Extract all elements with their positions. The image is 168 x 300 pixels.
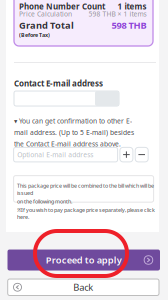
staticText: (Before Tax) <box>19 31 50 38</box>
staticText: Proceed to apply <box>46 254 122 266</box>
staticText: 1 items <box>117 1 146 12</box>
button[interactable]: Add e-mail field <box>120 147 133 162</box>
staticText: on the following month. <box>17 198 72 205</box>
staticText: Back <box>73 281 93 293</box>
staticText: 598 THB × 1 items <box>88 10 146 18</box>
button[interactable]: Proceed to apply <box>7 249 160 270</box>
button[interactable]: Remove e-mail field <box>135 147 148 162</box>
button[interactable]: Back <box>8 279 159 295</box>
staticText: Optional E-mail address <box>17 150 93 159</box>
staticText: Price Calculation <box>19 10 72 18</box>
staticText: This package price will be combined to t… <box>17 182 154 196</box>
staticText: mail address. (Up to 5 E-mail) besides <box>14 128 134 137</box>
staticText: the Contact E-mail address above. <box>14 139 121 148</box>
staticText: Contact E-mail address <box>14 78 103 89</box>
staticText: ※If you wish to pay package price separa… <box>17 206 155 220</box>
staticText: 598 THB <box>111 19 146 31</box>
staticText: Grand Total <box>19 19 74 31</box>
staticText: Phone Number Count <box>19 1 105 12</box>
staticText: ▾ You can get confirmation to other E- <box>14 116 132 125</box>
